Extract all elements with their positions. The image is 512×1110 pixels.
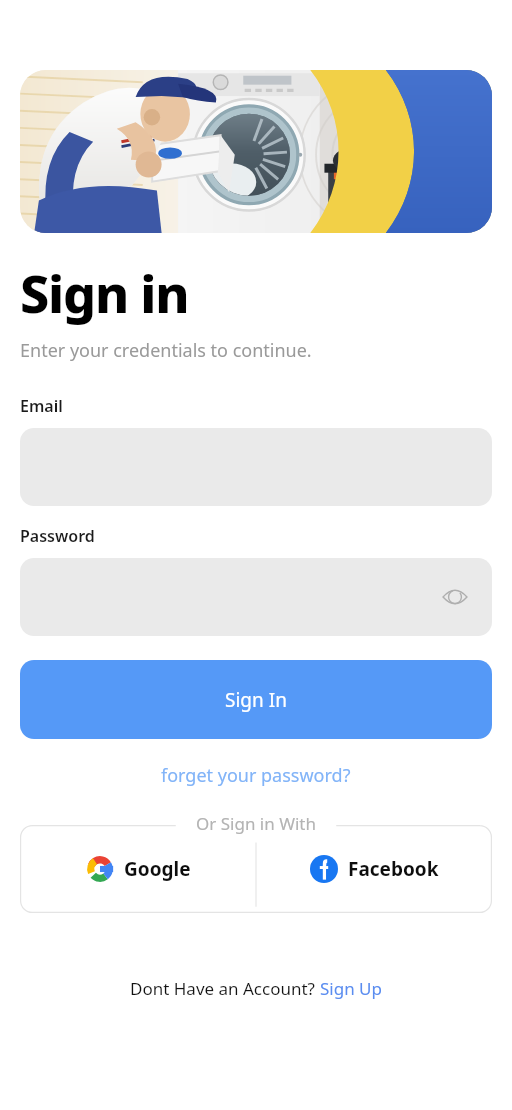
staticText: Dont Have an Account? (130, 977, 320, 1000)
staticText: Facebook (348, 856, 439, 882)
button[interactable]: Show password (438, 580, 472, 614)
staticText: Password (20, 525, 95, 547)
staticText: Sign In (225, 687, 287, 713)
staticText: Enter your credentials to continue. (20, 338, 312, 363)
button[interactable]: Google (20, 825, 256, 913)
button[interactable]: Password input field (20, 558, 492, 636)
staticText: forget your password? (161, 763, 351, 788)
button[interactable]: forget your password? (153, 759, 359, 792)
button[interactable]: Sign Up (320, 977, 382, 1000)
staticText: Sign in (20, 257, 189, 328)
staticText: Google (124, 856, 191, 882)
staticText: Email (20, 395, 63, 417)
button[interactable]: Sign In (20, 660, 492, 739)
staticText: Sign Up (320, 977, 382, 1000)
staticText: Or Sign in With (196, 812, 316, 835)
button[interactable]: Facebook (256, 825, 492, 913)
